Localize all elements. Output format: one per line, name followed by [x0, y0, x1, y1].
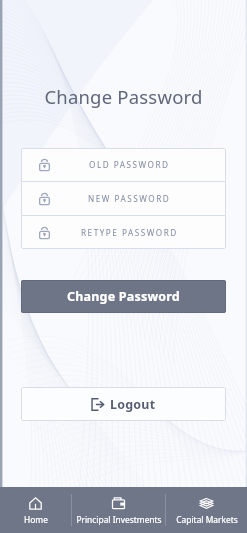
button[interactable]: Logout — [21, 387, 226, 421]
staticText: Change Password — [67, 288, 180, 305]
staticText: Principal Investments — [76, 514, 162, 525]
button[interactable]: Capital Markets — [166, 487, 247, 533]
button[interactable]: NEW PASSWORD — [21, 182, 226, 215]
staticText: OLD PASSWORD — [89, 159, 170, 170]
button[interactable]: Principal Investments — [72, 487, 165, 533]
button[interactable]: RETYPE PASSWORD — [21, 216, 226, 249]
staticText: Capital Markets — [176, 514, 238, 525]
button[interactable]: Change Password — [21, 280, 226, 313]
staticText: NEW PASSWORD — [88, 193, 171, 204]
staticText: Logout — [110, 396, 156, 413]
staticText: Home — [24, 514, 48, 525]
button[interactable]: OLD PASSWORD — [21, 148, 226, 181]
button[interactable]: Home — [0, 487, 71, 533]
staticText: RETYPE PASSWORD — [81, 227, 178, 238]
staticText: Change Password — [0, 84, 247, 109]
